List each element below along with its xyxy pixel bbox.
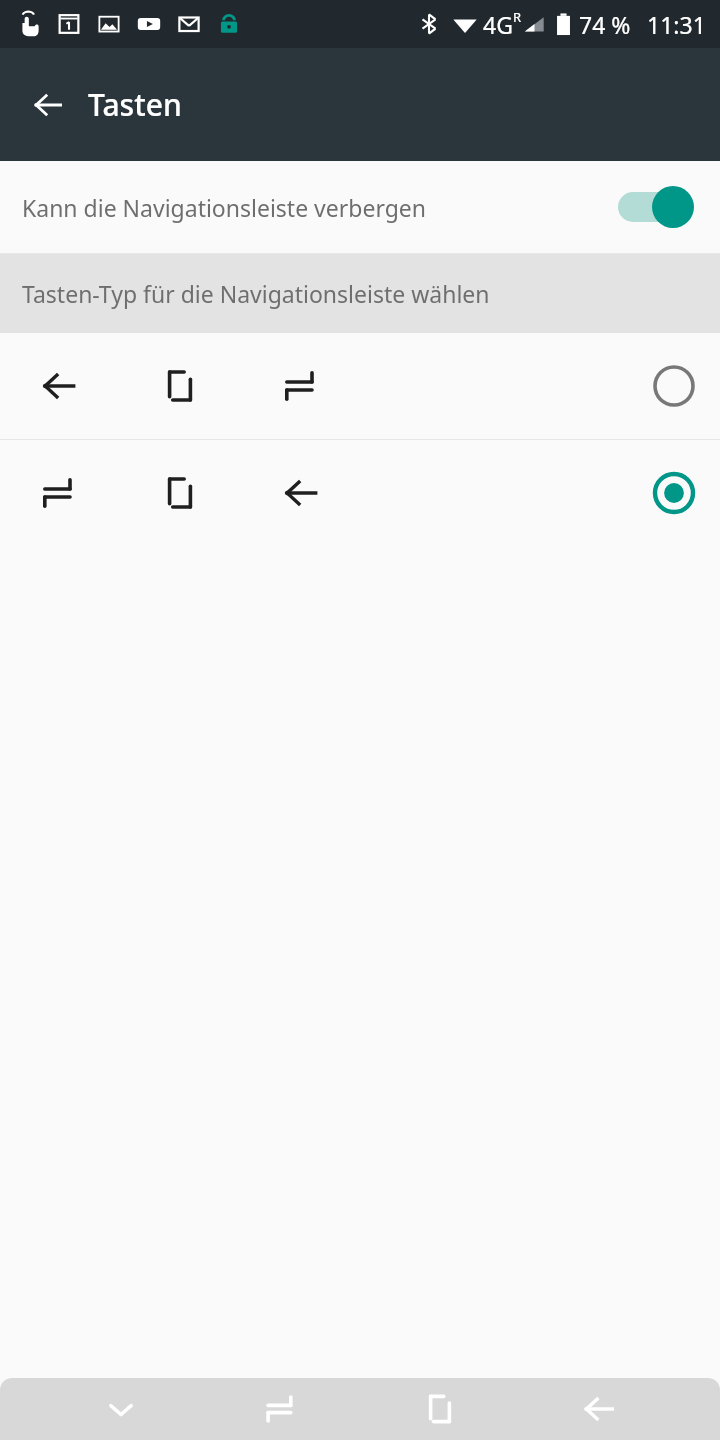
- staticText: Tasten-Typ für die Navigationsleiste wäh…: [22, 278, 490, 309]
- button[interactable]: Back: [20, 77, 76, 133]
- button[interactable]: Switch apps: [242, 1378, 318, 1440]
- button[interactable]: Hide navigation bar: [83, 1378, 159, 1440]
- staticText: 4G: [483, 9, 513, 40]
- staticText: Tasten: [88, 84, 182, 125]
- staticText: 74 %: [579, 9, 631, 40]
- button[interactable]: Kann die Navigationsleiste verbergen: [0, 161, 720, 253]
- staticText: 11:31: [647, 9, 706, 40]
- button[interactable]: Back: [561, 1378, 637, 1440]
- button[interactable]: [0, 440, 720, 546]
- staticText: R: [513, 8, 522, 26]
- staticText: Kann die Navigationsleiste verbergen: [22, 192, 426, 223]
- button[interactable]: Recents: [402, 1378, 478, 1440]
- button[interactable]: [0, 333, 720, 439]
